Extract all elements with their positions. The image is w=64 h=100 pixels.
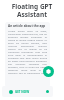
button[interactable]: GET NOW	[2, 86, 53, 97]
staticText: Floating GPT Assistant	[0, 2, 64, 19]
staticText: Lorem ipsum dolor sit amet, consectetur …	[8, 29, 47, 74]
button[interactable]: Open floating assistant	[43, 66, 54, 77]
staticText: GET NOW	[15, 90, 30, 94]
staticText: An article about the app	[8, 24, 46, 28]
button[interactable]: An article about the app	[5, 22, 50, 87]
